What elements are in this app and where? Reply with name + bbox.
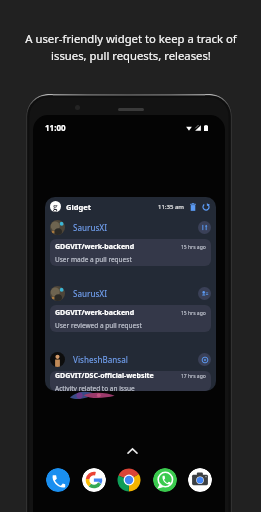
button[interactable]: Google [82, 468, 106, 492]
button[interactable]: GDGVIT/werk-backend [50, 305, 211, 332]
staticText: Gidget [66, 202, 91, 212]
staticText: User made a pull request [55, 255, 132, 264]
button[interactable]: GDGVIT/DSC-official-website [50, 371, 211, 391]
staticText: 11:00 [45, 122, 66, 133]
staticText: SaurusXI [73, 288, 107, 299]
staticText: 15 hrs ago [181, 244, 206, 251]
button[interactable]: Clear [188, 202, 198, 212]
button[interactable]: VisheshBansal [50, 348, 211, 371]
staticText: g [53, 201, 58, 212]
staticText: 15 hrs ago [181, 310, 206, 317]
staticText: VisheshBansal [73, 354, 128, 365]
staticText: SaurusXI [73, 222, 107, 233]
button[interactable]: Chrome [117, 468, 141, 492]
button[interactable]: SaurusXI [50, 282, 211, 305]
button[interactable]: Camera [188, 468, 212, 492]
button[interactable]: SaurusXI [50, 216, 211, 239]
staticText: Activity related to an issue [55, 384, 135, 391]
button[interactable]: GDGVIT/werk-backend [50, 239, 211, 266]
staticText: GDGVIT/werk-backend [55, 242, 135, 252]
staticText: User reviewed a pull request [55, 321, 142, 330]
button[interactable]: WhatsApp [153, 468, 177, 492]
staticText: 17 hrs ago [181, 373, 206, 380]
staticText: 11:35 am [158, 203, 184, 211]
button[interactable]: Phone [46, 468, 70, 492]
staticText: A user-friendly widget to keep a track o… [25, 31, 237, 64]
staticText: GDGVIT/DSC-official-website [55, 371, 154, 381]
button[interactable]: Refresh [201, 202, 211, 212]
staticText: GDGVIT/werk-backend [55, 308, 135, 318]
